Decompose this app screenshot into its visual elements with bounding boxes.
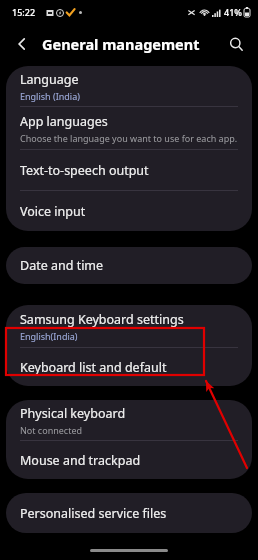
- button[interactable]: Date and time: [6, 247, 252, 284]
- staticText: Choose the language you want to use for …: [20, 132, 238, 144]
- button[interactable]: Language: [6, 66, 252, 106]
- staticText: Physical keyboard: [20, 405, 126, 422]
- staticText: Samsung Keyboard settings: [20, 311, 184, 328]
- button[interactable]: Keyboard list and default: [6, 348, 252, 386]
- staticText: Not connected: [20, 424, 83, 436]
- staticText: 15:22: [12, 6, 36, 18]
- staticText: Text-to-speech output: [20, 162, 149, 179]
- button[interactable]: Personalised service files: [6, 493, 252, 533]
- staticText: General management: [42, 34, 200, 54]
- staticText: Mouse and trackpad: [20, 452, 141, 469]
- button[interactable]: Physical keyboard: [6, 400, 252, 440]
- button[interactable]: Samsung Keyboard settings: [6, 305, 252, 347]
- staticText: Language: [20, 71, 79, 88]
- staticText: App languages: [20, 113, 108, 130]
- staticText: English(India): [20, 330, 78, 342]
- staticText: Personalised service files: [20, 505, 167, 522]
- button[interactable]: Text-to-speech output: [6, 150, 252, 190]
- staticText: Keyboard list and default: [20, 359, 167, 376]
- staticText: 41%: [224, 6, 242, 18]
- button[interactable]: Voice input: [6, 191, 252, 231]
- button[interactable]: App languages: [6, 107, 252, 149]
- button[interactable]: Search: [222, 30, 250, 58]
- staticText: English (India): [20, 90, 80, 102]
- button[interactable]: Mouse and trackpad: [6, 441, 252, 479]
- staticText: Voice input: [20, 203, 86, 220]
- button[interactable]: Back: [8, 30, 36, 58]
- staticText: Date and time: [20, 257, 104, 274]
